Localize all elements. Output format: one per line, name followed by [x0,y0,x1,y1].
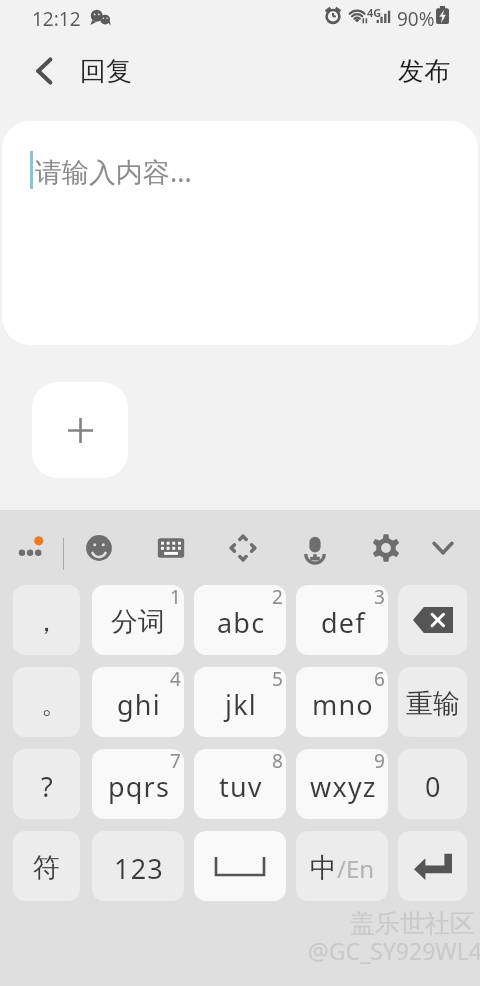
staticText: ghi [117,686,161,723]
staticText: abc [217,604,266,641]
staticText: 2 [272,585,283,610]
staticText: ? [41,768,54,805]
other: Back [22,49,66,93]
button[interactable]: Add attachment [32,382,128,478]
button[interactable]: Settings [364,526,408,570]
button[interactable]: 符 [13,831,80,901]
button[interactable]: Switch language [296,831,388,901]
button[interactable]: mno [296,667,388,737]
button[interactable]: jkl [194,667,286,737]
button[interactable]: 123 [92,831,184,901]
staticText: 发布 [398,55,450,88]
staticText: tuv [219,768,263,805]
button[interactable]: 发布 [398,55,450,88]
staticText: 9 [374,749,385,774]
button[interactable]: 分词 [92,585,184,655]
button[interactable]: 。 [13,667,80,737]
staticText: 6 [374,667,385,692]
button[interactable]: 0 [398,749,467,819]
button[interactable]: Voice input [293,526,337,570]
button[interactable]: More options [7,524,55,572]
staticText: 中 [310,851,337,885]
staticText: 90% [397,6,435,32]
button[interactable]: Keyboard [149,526,193,570]
staticText: 回复 [80,55,132,88]
button[interactable]: Space [194,831,286,901]
staticText: 1 [170,585,181,610]
staticText: 3 [374,585,385,610]
button[interactable]: 请输入内容... [2,121,478,345]
button[interactable]: Delete [398,585,467,655]
button[interactable]: Move cursor [221,526,265,570]
staticText: 请输入内容... [35,153,192,190]
staticText: 12:12 [32,6,81,32]
staticText: 123 [114,850,164,887]
staticText: @GC_SY929WL4 [308,935,480,966]
staticText: pqrs [108,768,171,805]
staticText: 0 [425,768,442,805]
button[interactable]: Hide keyboard [421,526,465,570]
button[interactable]: abc [194,585,286,655]
button[interactable]: ， [13,585,80,655]
staticText: ， [33,605,60,639]
button[interactable]: Back [22,49,132,93]
staticText: 分词 [111,605,165,639]
button[interactable]: wxyz [296,749,388,819]
staticText: 。 [41,687,68,721]
button[interactable]: tuv [194,749,286,819]
button[interactable]: Enter [398,831,467,901]
staticText: 4 [170,667,181,692]
staticText: 8 [272,749,283,774]
staticText: 盖乐世社区 [350,908,475,939]
button[interactable]: def [296,585,388,655]
button[interactable]: Emoji [77,526,121,570]
staticText: def [321,604,366,641]
staticText: 5 [272,667,283,692]
staticText: mno [312,686,374,723]
staticText: 重输 [406,687,460,721]
button[interactable]: ghi [92,667,184,737]
staticText: /En [337,852,375,885]
button[interactable]: pqrs [92,749,184,819]
staticText: jkl [225,686,257,723]
staticText: wxyz [310,768,377,805]
button[interactable]: 重输 [398,667,467,737]
button[interactable]: ? [13,749,80,819]
staticText: 4G [367,5,382,20]
staticText: 符 [33,851,60,885]
staticText: 7 [170,749,181,774]
